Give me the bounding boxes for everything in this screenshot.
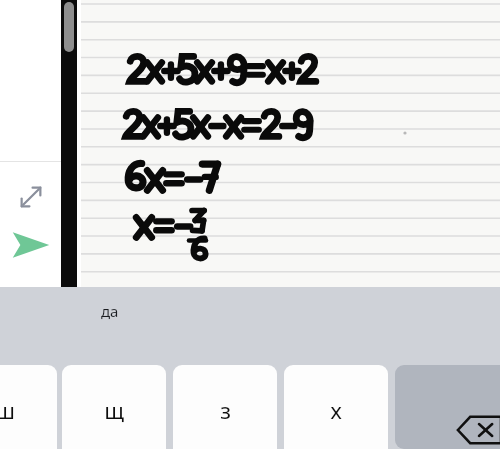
staticText: х (330, 395, 342, 425)
staticText: з (220, 395, 231, 425)
button[interactable]: Send (0, 225, 61, 265)
button[interactable]: х (284, 365, 388, 449)
staticText: да (101, 301, 119, 321)
button[interactable]: Backspace (395, 365, 500, 449)
button[interactable]: щ (62, 365, 166, 449)
button[interactable]: ш (0, 365, 57, 449)
button[interactable]: з (173, 365, 277, 449)
button[interactable]: да (70, 287, 150, 334)
staticText: щ (104, 395, 124, 425)
staticText: ш (0, 395, 15, 425)
button[interactable]: Expand (0, 179, 61, 215)
